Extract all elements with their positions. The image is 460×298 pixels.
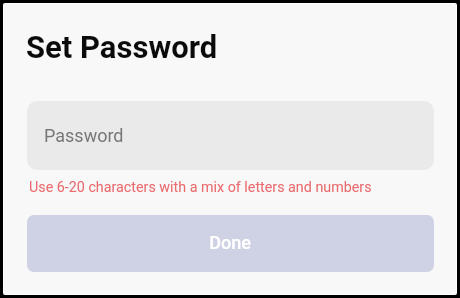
button[interactable]: Done bbox=[27, 215, 434, 272]
staticText: Password bbox=[44, 125, 124, 146]
button[interactable]: Password input field bbox=[27, 101, 434, 170]
staticText: Use 6-20 characters with a mix of letter… bbox=[29, 179, 372, 196]
staticText: Done bbox=[209, 232, 251, 253]
staticText: Set Password bbox=[26, 29, 218, 65]
